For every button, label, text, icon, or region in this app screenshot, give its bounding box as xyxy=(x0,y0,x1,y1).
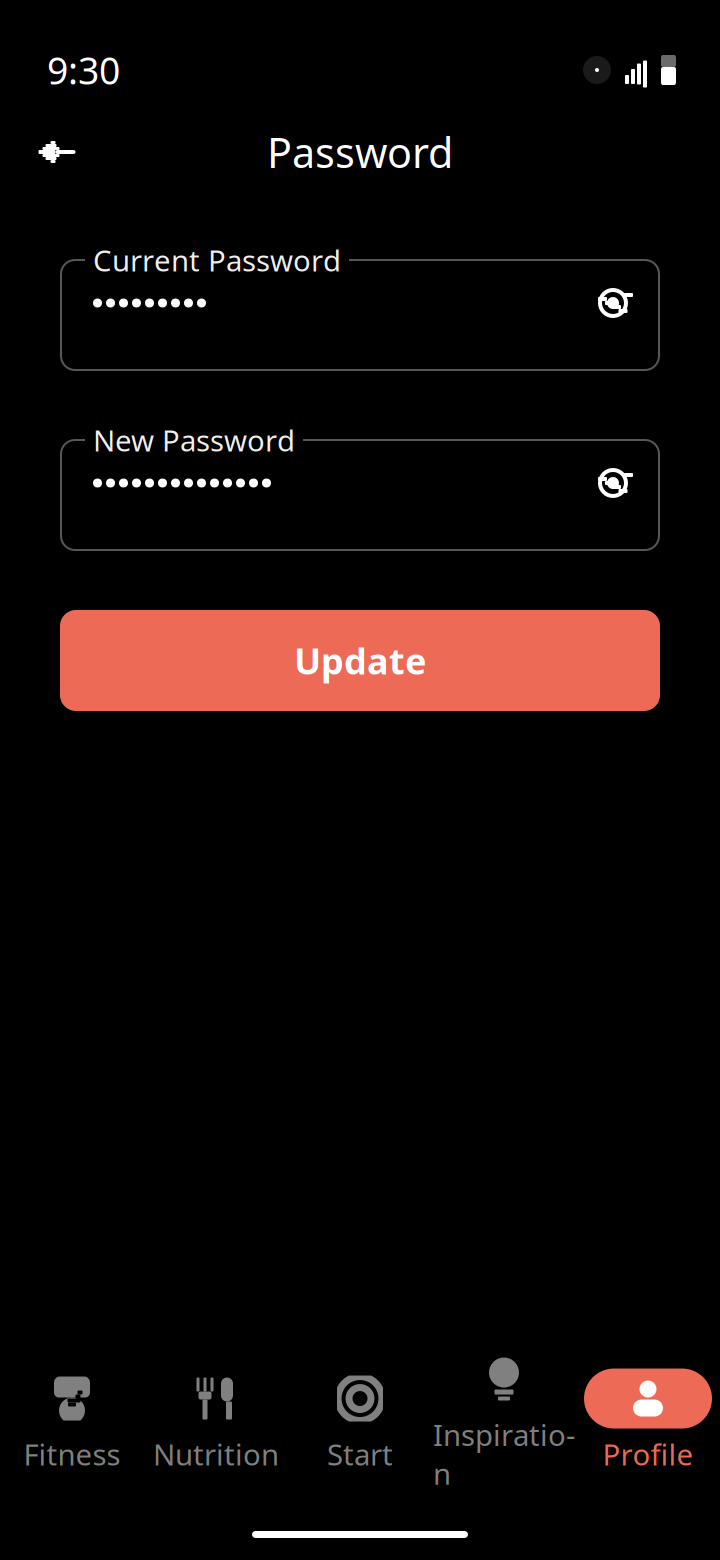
button[interactable]: Profile xyxy=(576,1373,720,1469)
staticText: New Password xyxy=(93,420,295,459)
button[interactable]: Show New Password xyxy=(583,453,643,513)
staticText: Inspiration xyxy=(433,1415,575,1493)
staticText: Fitness xyxy=(23,1434,120,1473)
staticText: Nutrition xyxy=(153,1434,279,1473)
button[interactable]: Start xyxy=(288,1373,432,1469)
staticText: Profile xyxy=(602,1434,693,1473)
button[interactable]: Inspiration xyxy=(432,1373,576,1469)
staticText: Current Password xyxy=(93,240,341,279)
button[interactable]: Update xyxy=(60,610,660,711)
staticText: Start xyxy=(327,1434,393,1473)
staticText: 9:30 xyxy=(47,45,120,95)
button[interactable]: Fitness xyxy=(0,1373,144,1469)
staticText: Update xyxy=(294,637,426,684)
button[interactable]: Nutrition xyxy=(144,1373,288,1469)
staticText: Password xyxy=(267,125,453,179)
button[interactable]: Back xyxy=(25,120,89,184)
button[interactable]: Show Current Password xyxy=(583,273,643,333)
